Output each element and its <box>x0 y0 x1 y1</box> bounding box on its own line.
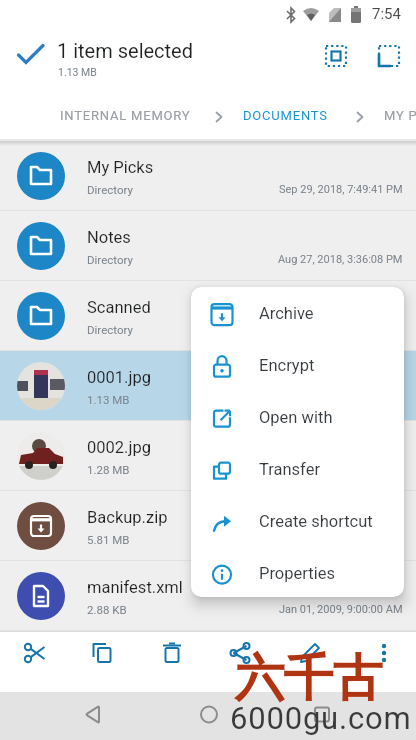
staticText: 2.88 KB <box>87 603 127 616</box>
button[interactable]: Open with <box>191 393 404 445</box>
button[interactable]: manifest.xml <box>0 561 416 631</box>
button[interactable]: Archive <box>191 289 404 341</box>
button[interactable]: Backup.zip <box>0 491 416 561</box>
staticText: 1.13 MB <box>87 393 130 406</box>
staticText: manifest.xml <box>87 578 183 597</box>
button[interactable] <box>219 632 261 674</box>
staticText: Create shortcut <box>259 512 373 531</box>
button[interactable] <box>71 694 115 738</box>
button[interactable]: My Picks <box>0 141 416 211</box>
staticText: 7:54 <box>372 5 401 23</box>
staticText: Properties <box>259 564 335 583</box>
button[interactable]: Create shortcut <box>191 497 404 549</box>
button[interactable]: 0002.jpg <box>0 421 416 491</box>
staticText: Jan 01, 2009, 9:00:00 AM <box>279 603 403 616</box>
staticText: 5.81 MB <box>87 533 130 546</box>
staticText: Aug 27, 2018, 3:36:08 PM <box>278 253 403 266</box>
staticText: Transfer <box>259 460 320 479</box>
staticText: Backup.zip <box>87 508 168 527</box>
button[interactable]: 0001.jpg <box>0 351 416 421</box>
staticText: Sep 29, 2018, 7:49:41 PM <box>279 183 403 196</box>
staticText: 0002.jpg <box>87 438 151 457</box>
staticText: Open with <box>259 408 333 427</box>
button[interactable] <box>151 632 193 674</box>
button[interactable]: MY P <box>384 108 416 123</box>
button[interactable] <box>14 632 56 674</box>
button[interactable]: DOCUMENTS <box>243 108 328 123</box>
staticText: 0001.jpg <box>87 368 151 387</box>
button[interactable]: Properties <box>191 549 404 597</box>
staticText: 6000gu.com <box>230 700 412 736</box>
button[interactable]: Notes <box>0 211 416 281</box>
button[interactable]: Transfer <box>191 445 404 497</box>
button[interactable] <box>289 632 331 674</box>
staticText: Directory <box>87 323 133 336</box>
button[interactable] <box>10 35 52 77</box>
button[interactable] <box>315 35 357 77</box>
staticText: 1.28 MB <box>87 463 130 476</box>
staticText: Scanned <box>87 298 151 317</box>
staticText: 1.13 MB <box>58 66 97 78</box>
button[interactable] <box>81 632 123 674</box>
staticText: My Picks <box>87 158 154 177</box>
staticText: 六千古 <box>235 647 382 710</box>
staticText: Encrypt <box>259 356 315 375</box>
button[interactable]: Scanned <box>0 281 416 351</box>
button[interactable]: INTERNAL MEMORY <box>60 108 191 123</box>
staticText: Directory <box>87 183 133 196</box>
button[interactable] <box>368 35 410 77</box>
staticText: 1 item selected <box>57 39 194 62</box>
button[interactable] <box>187 694 231 738</box>
staticText: Directory <box>87 253 133 266</box>
button[interactable] <box>363 632 405 674</box>
button[interactable]: Encrypt <box>191 341 404 393</box>
staticText: Archive <box>259 304 314 323</box>
staticText: Notes <box>87 228 131 247</box>
button[interactable] <box>300 694 344 738</box>
